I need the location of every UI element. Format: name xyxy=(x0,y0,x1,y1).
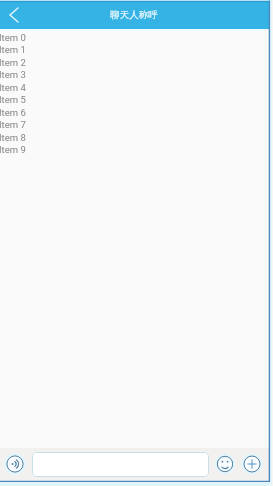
button[interactable] xyxy=(32,452,209,477)
staticText: Item 0 xyxy=(0,32,26,43)
staticText: Item 8 xyxy=(0,132,26,143)
button[interactable]: Item 1 xyxy=(0,43,39,55)
button[interactable]: Item 7 xyxy=(0,118,39,130)
button[interactable]: Emoji xyxy=(214,453,236,475)
button[interactable]: Item 8 xyxy=(0,131,39,143)
staticText: Item 3 xyxy=(0,69,26,80)
button[interactable]: Item 3 xyxy=(0,68,39,80)
button[interactable]: Item 9 xyxy=(0,143,39,155)
button[interactable]: Item 0 xyxy=(0,31,39,43)
button[interactable]: Item 5 xyxy=(0,93,39,105)
button[interactable]: Voice input xyxy=(4,453,26,475)
staticText: 聊天人称呼 xyxy=(110,9,158,21)
button[interactable]: Item 4 xyxy=(0,81,39,93)
staticText: Item 6 xyxy=(0,107,26,118)
button[interactable]: Add xyxy=(241,453,263,475)
staticText: Item 7 xyxy=(0,119,26,130)
staticText: Item 1 xyxy=(0,44,26,55)
staticText: Item 5 xyxy=(0,94,26,105)
staticText: Item 4 xyxy=(0,82,26,93)
button[interactable]: Item 2 xyxy=(0,56,39,68)
staticText: Item 9 xyxy=(0,144,26,155)
staticText: Item 2 xyxy=(0,57,26,68)
button[interactable]: Back xyxy=(0,1,28,29)
button[interactable]: Item 6 xyxy=(0,106,39,118)
